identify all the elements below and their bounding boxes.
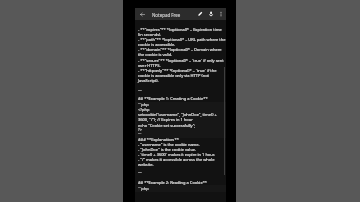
staticText: the cookie is valid. (138, 52, 173, 57)
staticText: - **"httponly"** *(optional)* – `true` i… (138, 68, 217, 73)
button[interactable]: Edit note (195, 8, 205, 20)
staticText: 3600, "/"); // Expires in 1 hour (138, 117, 193, 122)
button[interactable]: More options (216, 8, 226, 20)
staticText: --- (138, 87, 142, 92)
staticText: - `time() + 3600` makes it expire in 1 h… (138, 152, 215, 157)
staticText: website. (138, 162, 154, 167)
staticText: JavaScript). (138, 78, 159, 83)
staticText: - **"path"** *(optional)* – URL path whe… (138, 37, 226, 42)
staticText: - **"expires"** *(optional)* – Expiratio… (138, 27, 222, 32)
staticText: (in seconds). (138, 32, 162, 37)
staticText: cookie is accessible only via HTTP (not (138, 73, 210, 78)
staticText: Notepad Free (152, 12, 181, 18)
button[interactable]: Voice input (206, 8, 216, 20)
staticText: over HTTPS. (138, 63, 161, 68)
staticText: - **"domain"** *(optional)* – Domain whe… (138, 47, 222, 52)
staticText: ```php (138, 186, 149, 191)
staticText: - **"secure"** *(optional)* – `true` if … (138, 58, 224, 63)
staticText: - "JohnDoe" is the cookie value. (138, 147, 197, 152)
staticText: ?> (138, 127, 143, 132)
staticText: - "username" is the cookie name. (138, 142, 200, 147)
staticText: <?php (138, 107, 150, 112)
staticText: ## **Example 2: Reading a Cookie** (138, 180, 208, 185)
button[interactable]: Back (136, 8, 148, 20)
staticText: - "/" makes it accessible across the who… (138, 157, 215, 162)
staticText: ``` (138, 132, 142, 137)
staticText: cookie is accessible. (138, 42, 176, 47)
staticText: setcookie("username", "JohnDoe", time() … (138, 112, 217, 117)
staticText: --- (138, 169, 142, 174)
staticText: echo "Cookie set successfully"; (138, 123, 196, 128)
staticText: ### **Explanation:** (138, 137, 179, 142)
staticText: ## **Example 1: Creating a Cookie** (138, 96, 208, 101)
staticText: ```php (138, 102, 149, 107)
